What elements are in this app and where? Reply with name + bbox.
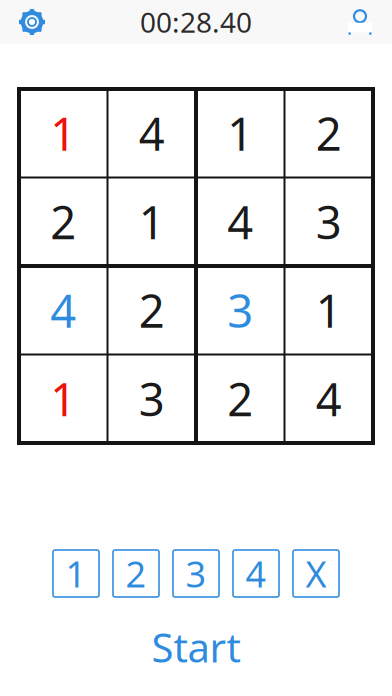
button[interactable]: 1 xyxy=(53,550,99,597)
staticText: X xyxy=(305,550,326,597)
staticText: 2 xyxy=(125,550,146,597)
staticText: 1 xyxy=(50,369,76,429)
button[interactable]: 1 xyxy=(196,89,284,177)
button[interactable]: 1 xyxy=(107,177,196,266)
button[interactable]: 2 xyxy=(196,354,284,443)
button[interactable]: 2 xyxy=(284,89,373,177)
button[interactable]: 4 xyxy=(196,177,284,266)
button[interactable]: 3 xyxy=(107,354,196,443)
staticText: 1 xyxy=(65,550,86,597)
button[interactable]: Settings xyxy=(10,0,54,44)
staticText: 3 xyxy=(316,192,342,252)
button[interactable]: 4 xyxy=(284,354,373,443)
button[interactable]: 4 xyxy=(19,266,107,354)
staticText: Start xyxy=(151,620,240,673)
staticText: 4 xyxy=(227,192,253,252)
staticText: 1 xyxy=(50,103,76,163)
staticText: 2 xyxy=(50,192,76,252)
button[interactable]: 3 xyxy=(284,177,373,266)
button[interactable]: 2 xyxy=(113,550,159,597)
button[interactable]: 2 xyxy=(19,177,107,266)
staticText: 4 xyxy=(50,280,76,340)
staticText: 4 xyxy=(316,369,342,429)
staticText: 4 xyxy=(245,550,266,597)
staticText: 3 xyxy=(139,369,165,429)
button[interactable]: 3 xyxy=(196,266,284,354)
button[interactable]: Start xyxy=(126,625,266,669)
staticText: 00:28.40 xyxy=(140,3,252,41)
button[interactable]: 4 xyxy=(107,89,196,177)
staticText: 1 xyxy=(316,280,342,340)
staticText: 3 xyxy=(227,280,253,340)
button[interactable]: X xyxy=(293,550,339,597)
button[interactable]: 1 xyxy=(284,266,373,354)
staticText: 2 xyxy=(316,103,342,163)
staticText: 1 xyxy=(227,103,253,163)
staticText: 2 xyxy=(227,369,253,429)
button[interactable]: 1 xyxy=(19,89,107,177)
staticText: 1 xyxy=(139,192,165,252)
button[interactable]: 4 xyxy=(233,550,279,597)
staticText: 2 xyxy=(139,280,165,340)
staticText: 4 xyxy=(139,103,165,163)
button[interactable]: Account xyxy=(338,0,382,44)
button[interactable]: 2 xyxy=(107,266,196,354)
button[interactable]: 1 xyxy=(19,354,107,443)
staticText: 3 xyxy=(185,550,206,597)
button[interactable]: 3 xyxy=(173,550,219,597)
